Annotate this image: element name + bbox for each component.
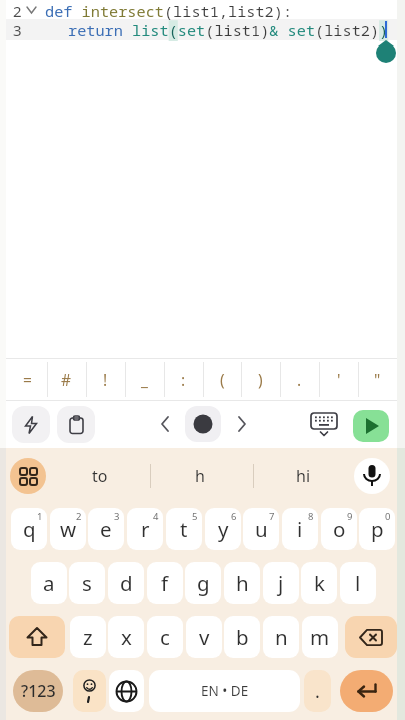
- button[interactable]: o: [321, 508, 357, 550]
- button[interactable]: ?123: [13, 670, 63, 712]
- staticText: .: [297, 369, 302, 390]
- staticText: v: [199, 623, 210, 651]
- staticText: n: [275, 623, 288, 651]
- staticText: 6: [231, 510, 237, 523]
- staticText: k: [314, 569, 325, 597]
- staticText: 3: [13, 20, 22, 40]
- button[interactable]: q: [11, 508, 47, 550]
- staticText: y: [218, 515, 229, 543]
- staticText: d: [120, 569, 133, 597]
- button[interactable]: h: [160, 458, 240, 494]
- staticText: ): [258, 369, 263, 390]
- button[interactable]: v: [186, 616, 222, 658]
- staticText: r: [141, 515, 150, 543]
- button[interactable]: p: [359, 508, 395, 550]
- button[interactable]: w: [50, 508, 86, 550]
- staticText: 2: [13, 1, 22, 21]
- button[interactable]: .: [280, 359, 319, 400]
- staticText: to: [92, 465, 108, 487]
- staticText: ": [374, 369, 381, 390]
- button[interactable]: .: [304, 670, 331, 712]
- button[interactable]: ): [241, 359, 280, 400]
- button[interactable]: c: [147, 616, 183, 658]
- staticText: 4: [153, 510, 159, 523]
- staticText: h: [195, 465, 205, 487]
- button[interactable]: y: [205, 508, 241, 550]
- button[interactable]: _: [125, 359, 164, 400]
- button[interactable]: :: [164, 359, 203, 400]
- staticText: _: [141, 369, 148, 390]
- staticText: def intersect(list1,list2):: [45, 1, 293, 22]
- staticText: 7: [269, 510, 275, 523]
- staticText: g: [197, 569, 210, 597]
- button[interactable]: hi: [263, 458, 343, 494]
- staticText: #: [61, 369, 72, 390]
- button[interactable]: i: [282, 508, 318, 550]
- button[interactable]: x: [108, 616, 144, 658]
- staticText: x: [121, 623, 132, 651]
- button[interactable]: [109, 670, 144, 712]
- button[interactable]: !: [86, 359, 125, 400]
- staticText: (: [220, 369, 225, 390]
- staticText: i: [297, 515, 303, 543]
- button[interactable]: [345, 616, 397, 658]
- staticText: ': [337, 369, 341, 390]
- button[interactable]: [9, 616, 65, 658]
- button[interactable]: [353, 410, 389, 442]
- button[interactable]: a: [31, 562, 67, 604]
- button[interactable]: [73, 670, 106, 712]
- staticText: return list(set(list1)& set(list2)): [68, 20, 389, 41]
- button[interactable]: f: [147, 562, 183, 604]
- staticText: .: [315, 679, 320, 704]
- staticText: hi: [296, 465, 311, 487]
- button[interactable]: m: [302, 616, 338, 658]
- button[interactable]: b: [224, 616, 260, 658]
- button[interactable]: [354, 458, 390, 494]
- staticText: EN • DE: [201, 682, 249, 700]
- button[interactable]: t: [166, 508, 202, 550]
- staticText: m: [310, 623, 330, 651]
- staticText: q: [23, 515, 36, 543]
- staticText: 3: [114, 510, 120, 523]
- staticText: !: [103, 369, 108, 390]
- staticText: 1: [37, 510, 43, 523]
- button[interactable]: ': [319, 359, 358, 400]
- button[interactable]: [12, 406, 50, 443]
- button[interactable]: u: [243, 508, 279, 550]
- staticText: u: [255, 515, 268, 543]
- staticText: a: [43, 569, 55, 597]
- staticText: t: [180, 515, 188, 543]
- button[interactable]: [57, 406, 95, 443]
- button[interactable]: r: [127, 508, 163, 550]
- staticText: f: [161, 569, 169, 597]
- staticText: s: [82, 569, 92, 597]
- button[interactable]: g: [185, 562, 221, 604]
- staticText: 0: [385, 510, 391, 523]
- staticText: l: [355, 569, 361, 597]
- staticText: j: [278, 569, 284, 597]
- button[interactable]: e: [88, 508, 124, 550]
- button[interactable]: z: [70, 616, 106, 658]
- staticText: 9: [347, 510, 353, 523]
- staticText: o: [333, 515, 346, 543]
- button[interactable]: d: [108, 562, 144, 604]
- button[interactable]: [340, 670, 393, 712]
- button[interactable]: [10, 458, 46, 494]
- button[interactable]: l: [340, 562, 376, 604]
- button[interactable]: j: [263, 562, 299, 604]
- button[interactable]: EN • DE: [149, 670, 300, 712]
- button[interactable]: [185, 406, 221, 442]
- button[interactable]: k: [301, 562, 337, 604]
- button[interactable]: to: [60, 458, 140, 494]
- button[interactable]: =: [8, 359, 47, 400]
- button[interactable]: #: [47, 359, 86, 400]
- button[interactable]: (: [203, 359, 242, 400]
- button[interactable]: ": [358, 359, 397, 400]
- button[interactable]: [308, 408, 340, 440]
- button[interactable]: [155, 414, 175, 434]
- staticText: c: [160, 623, 170, 651]
- button[interactable]: n: [263, 616, 299, 658]
- button[interactable]: s: [69, 562, 105, 604]
- button[interactable]: h: [224, 562, 260, 604]
- button[interactable]: [232, 414, 252, 434]
